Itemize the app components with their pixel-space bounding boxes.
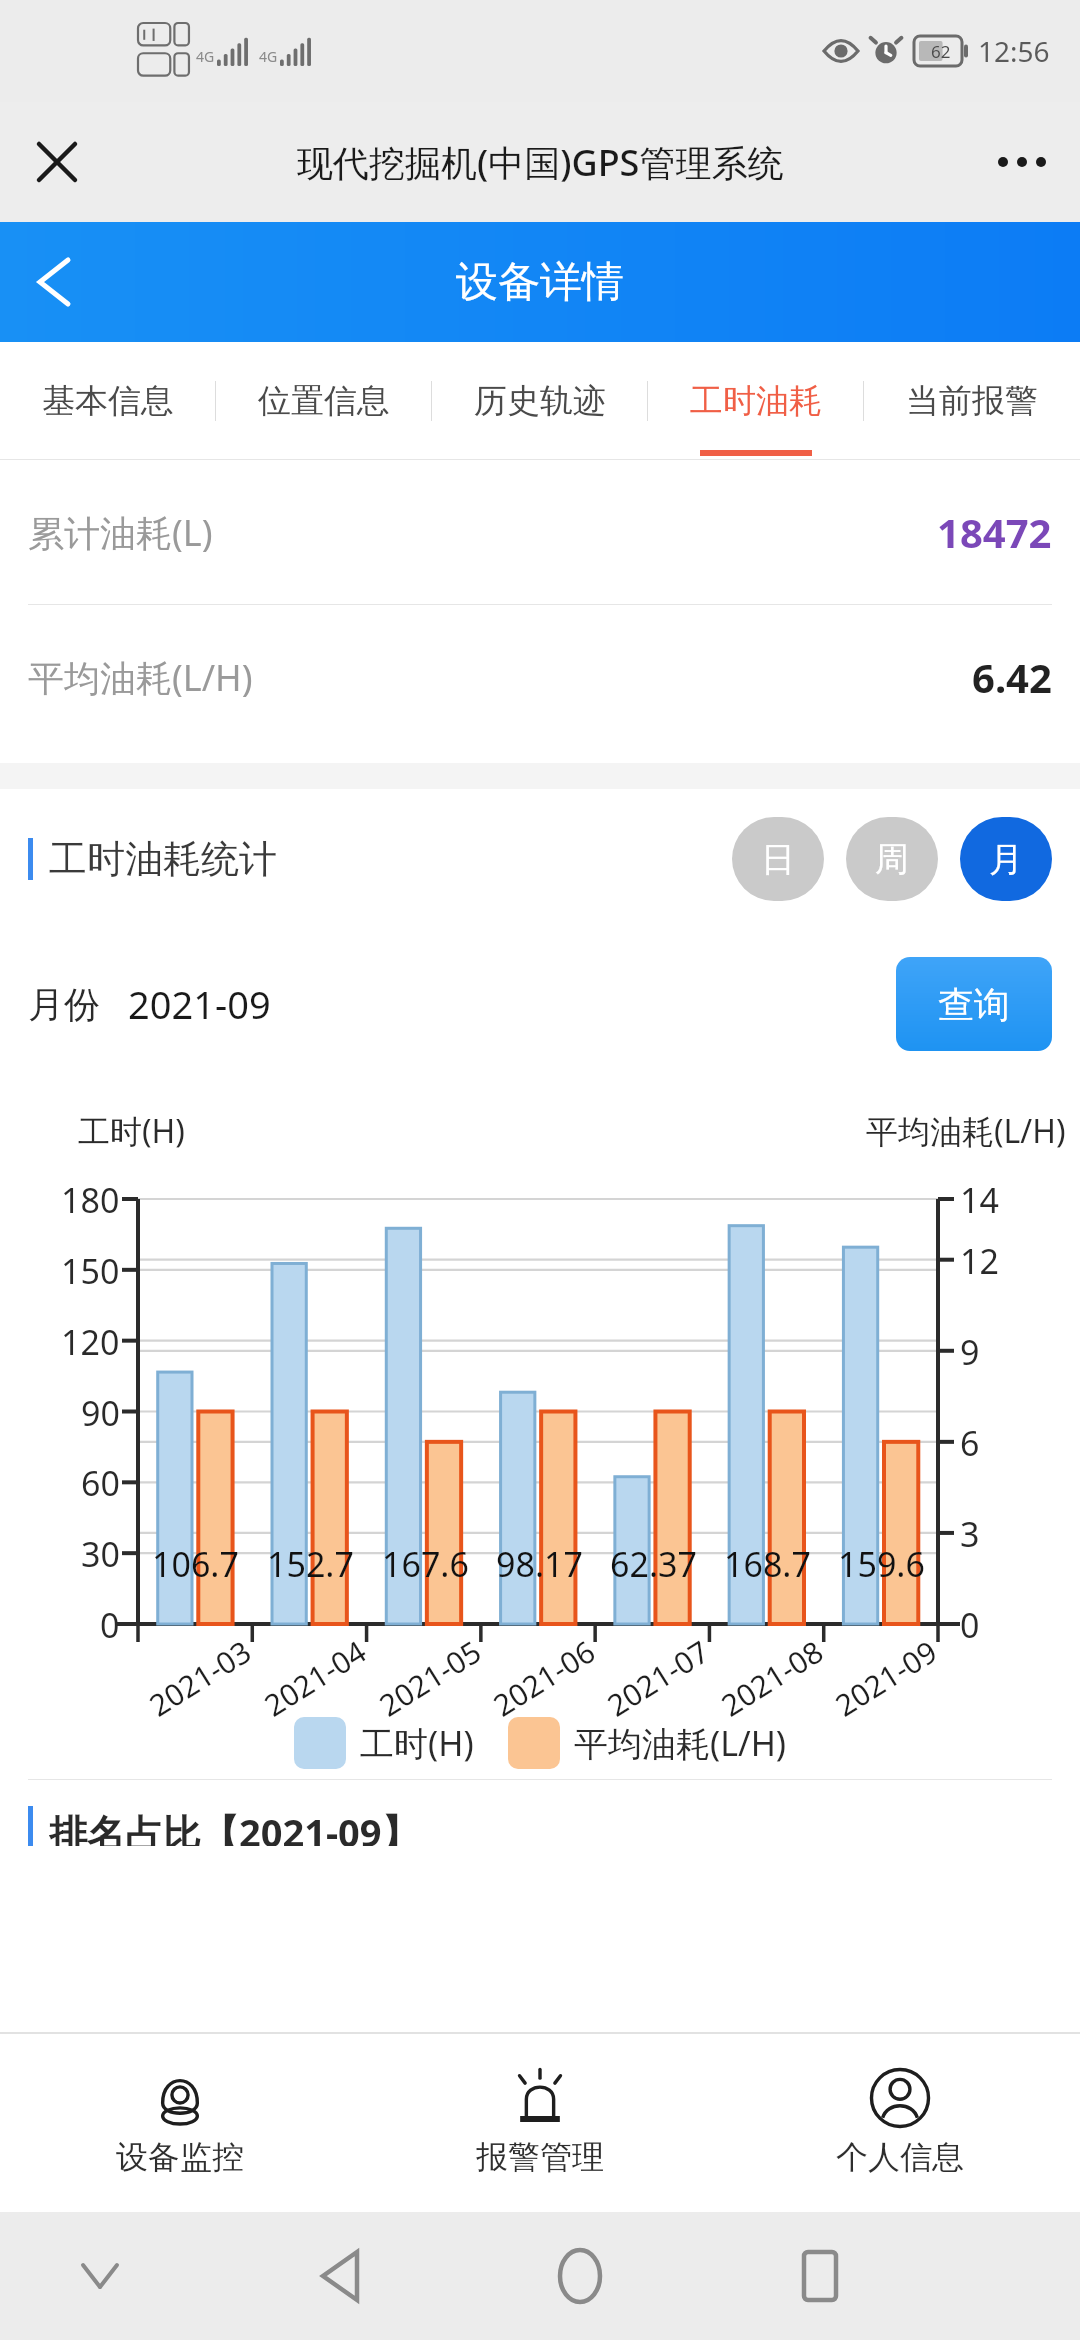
staticText: 工时(H) — [78, 1109, 185, 1153]
staticText: 167.6 — [382, 1541, 469, 1587]
staticText: 2021-04 — [256, 1631, 374, 1725]
staticText: 周 — [875, 838, 909, 881]
staticText: 平均油耗(L/H) — [28, 653, 253, 702]
button[interactable]: 位置信息 — [216, 342, 432, 460]
staticText: 2021-09 — [128, 978, 271, 1030]
staticText: 152.7 — [267, 1541, 354, 1587]
staticText: 12:56 — [978, 32, 1050, 70]
staticText: 历史轨迹 — [474, 380, 606, 422]
staticText: 9 — [960, 1329, 980, 1375]
staticText: 150 — [61, 1248, 120, 1294]
staticText: 0 — [960, 1602, 980, 1648]
staticText: 报警管理 — [476, 2137, 604, 2177]
staticText: 4G — [196, 47, 215, 66]
staticText: 现代挖掘机(中国)GPS管理系统 — [297, 138, 784, 187]
staticText: 工时(H) — [360, 1720, 474, 1766]
button[interactable]: 查询 — [896, 957, 1052, 1051]
staticText: 62 — [931, 40, 951, 63]
button[interactable]: Back — [18, 246, 90, 318]
staticText: 2021-08 — [713, 1631, 831, 1725]
staticText: 查询 — [938, 982, 1010, 1027]
staticText: 6.42 — [972, 650, 1052, 704]
button[interactable]: 当前报警 — [864, 342, 1080, 460]
staticText: 设备监控 — [116, 2137, 244, 2177]
staticText: 2021-06 — [485, 1631, 603, 1725]
button[interactable]: 周 — [846, 817, 938, 901]
staticText: 工时油耗统计 — [49, 835, 277, 883]
button[interactable]: 累计油耗(L) — [0, 460, 1080, 604]
button[interactable]: Home — [540, 2236, 620, 2316]
staticText: 12 — [960, 1238, 999, 1284]
staticText: 设备详情 — [456, 256, 624, 309]
button[interactable]: 平均油耗(L/H) — [0, 605, 1080, 749]
staticText: 排名占比【2021-09】 — [49, 1806, 420, 1846]
staticText: 平均油耗(L/H) — [574, 1720, 787, 1766]
staticText: 个人信息 — [836, 2137, 964, 2177]
button[interactable]: 个人信息 — [720, 2032, 1080, 2212]
staticText: 6 — [960, 1420, 980, 1466]
staticText: 2021-03 — [141, 1631, 259, 1725]
button[interactable]: 历史轨迹 — [432, 342, 648, 460]
button[interactable]: Close — [22, 127, 92, 197]
button[interactable]: 工时油耗 — [648, 342, 864, 460]
staticText: 2021-05 — [371, 1631, 489, 1725]
button[interactable]: Hide keyboard — [60, 2236, 140, 2316]
staticText: 62.37 — [610, 1541, 697, 1587]
staticText: 30 — [81, 1531, 120, 1577]
staticText: 2021-09 — [827, 1631, 945, 1725]
button[interactable]: 2021-09 — [128, 978, 271, 1030]
button[interactable]: Recents — [780, 2236, 860, 2316]
staticText: 累计油耗(L) — [28, 508, 213, 557]
staticText: 168.7 — [724, 1541, 811, 1587]
staticText: 日 — [761, 838, 795, 881]
staticText: 月份 — [28, 982, 100, 1027]
button[interactable]: Back — [300, 2236, 380, 2316]
staticText: 4G — [259, 47, 278, 66]
staticText: 159.6 — [838, 1541, 925, 1587]
button[interactable]: 报警管理 — [360, 2032, 720, 2212]
button[interactable]: 基本信息 — [0, 342, 216, 460]
staticText: 120 — [61, 1319, 120, 1365]
staticText: 106.7 — [152, 1541, 239, 1587]
staticText: 180 — [61, 1177, 120, 1223]
staticText: 当前报警 — [906, 380, 1038, 422]
button[interactable]: 设备监控 — [0, 2032, 360, 2212]
staticText: 基本信息 — [42, 380, 174, 422]
staticText: 位置信息 — [258, 380, 390, 422]
staticText: 工时油耗 — [690, 380, 822, 422]
staticText: 月 — [989, 838, 1023, 881]
button[interactable]: More options — [986, 126, 1058, 198]
staticText: 0 — [100, 1602, 120, 1648]
button[interactable]: 月 — [960, 817, 1052, 901]
staticText: 平均油耗(L/H) — [866, 1109, 1066, 1153]
staticText: 60 — [81, 1460, 120, 1506]
button[interactable]: 日 — [732, 817, 824, 901]
staticText: 18472 — [937, 505, 1052, 559]
staticText: 2021-07 — [599, 1631, 717, 1725]
staticText: 98.17 — [496, 1541, 583, 1587]
staticText: 90 — [81, 1390, 120, 1436]
staticText: 14 — [960, 1177, 999, 1223]
staticText: 3 — [960, 1511, 980, 1557]
